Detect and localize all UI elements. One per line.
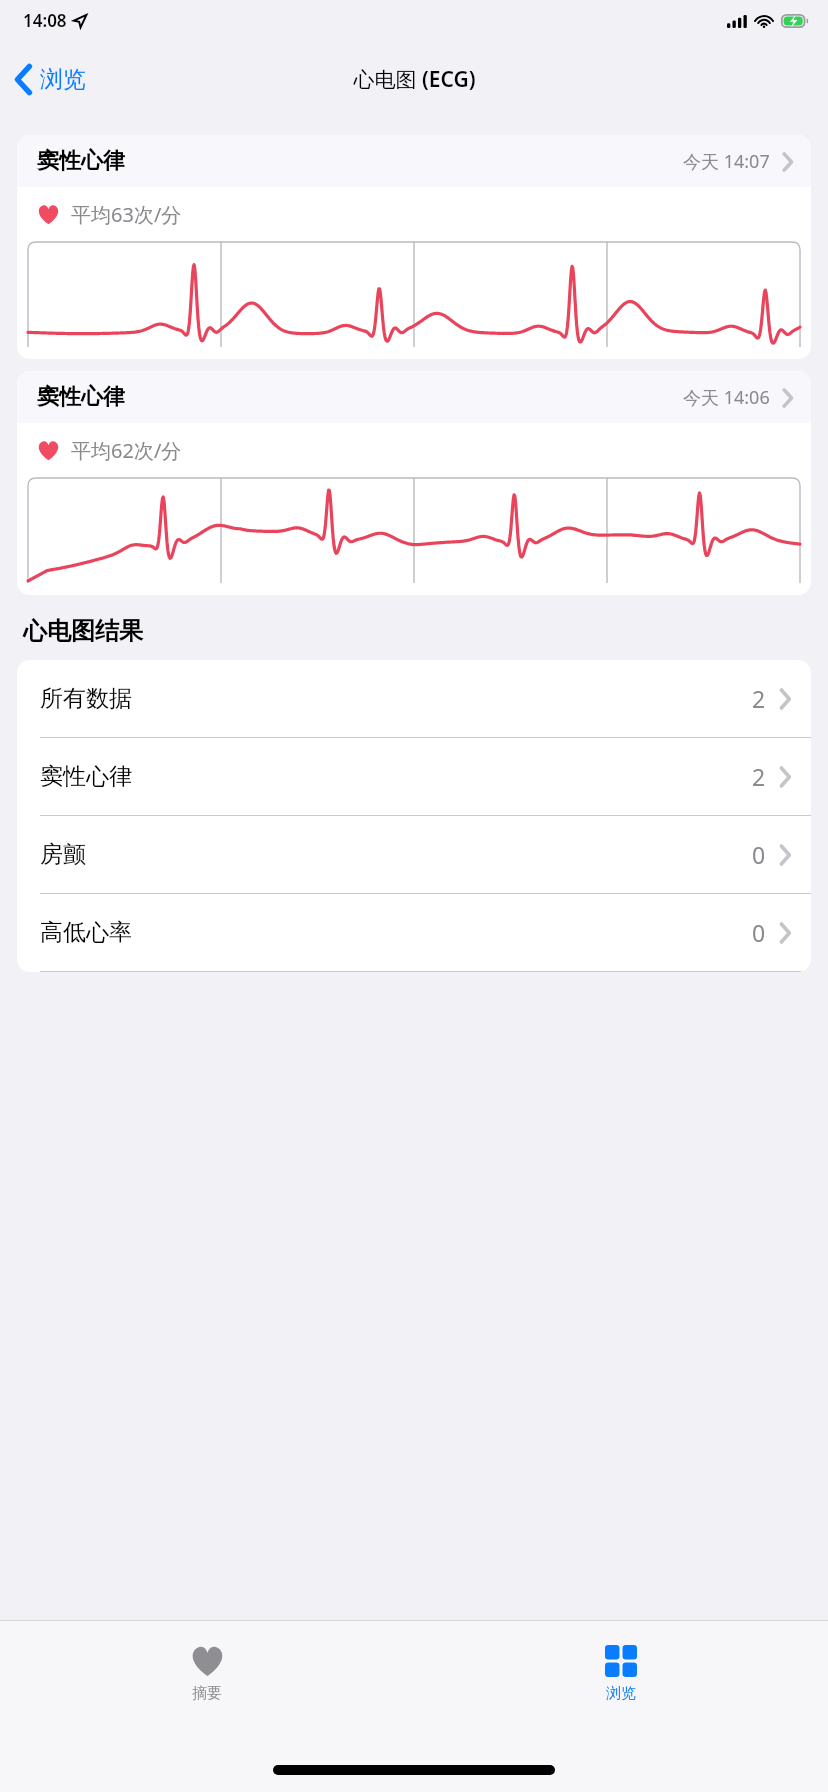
staticText: 2 — [752, 683, 766, 714]
staticText: 所有数据 — [40, 684, 132, 713]
staticText: 浏览 — [40, 65, 86, 94]
button[interactable]: 浏览 — [414, 1621, 828, 1726]
button[interactable]: 窦性心律 — [17, 135, 811, 359]
button[interactable]: 浏览 — [0, 57, 98, 102]
staticText: 平均62次/分 — [71, 437, 182, 464]
staticText: 房颤 — [40, 840, 86, 869]
button[interactable]: 窦性心律 — [17, 738, 811, 815]
staticText: 心电图 (ECG) — [353, 65, 476, 94]
staticText: 窦性心律 — [37, 147, 125, 175]
staticText: 高低心率 — [40, 918, 132, 947]
staticText: 0 — [752, 839, 766, 870]
staticText: 14:08 — [23, 9, 67, 32]
button[interactable]: 所有数据 — [17, 660, 811, 737]
button[interactable]: 房颤 — [17, 816, 811, 893]
staticText: 今天 14:07 — [683, 149, 770, 174]
staticText: 2 — [752, 761, 766, 792]
staticText: 今天 14:06 — [683, 385, 770, 410]
staticText: 平均63次/分 — [71, 201, 182, 228]
staticText: 窦性心律 — [37, 383, 125, 411]
staticText: 窦性心律 — [40, 762, 132, 791]
staticText: 摘要 — [192, 1684, 222, 1703]
staticText: 心电图结果 — [23, 616, 143, 646]
button[interactable]: 摘要 — [0, 1621, 414, 1726]
button[interactable]: 高低心率 — [17, 894, 811, 971]
staticText: 0 — [752, 917, 766, 948]
button[interactable]: 窦性心律 — [17, 371, 811, 595]
staticText: 浏览 — [606, 1684, 636, 1703]
